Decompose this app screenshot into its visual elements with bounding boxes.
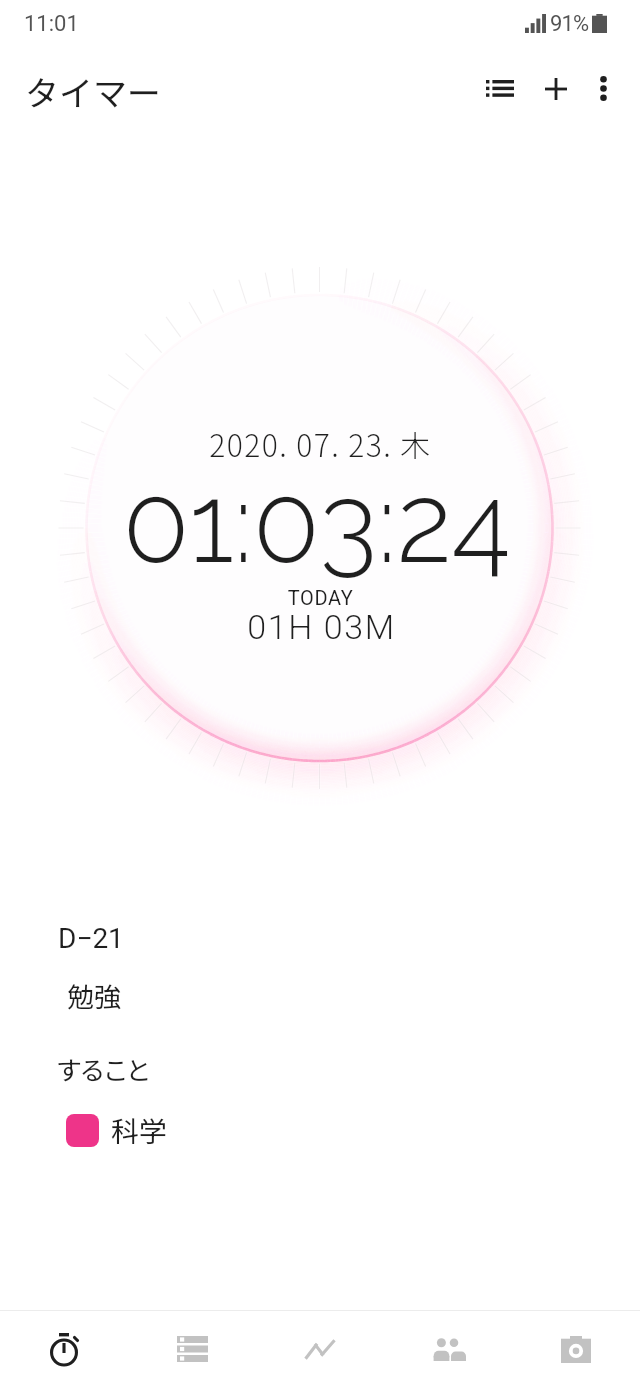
- button[interactable]: More options: [575, 60, 631, 116]
- staticText: D−21: [58, 922, 124, 955]
- staticText: タイマー: [25, 67, 161, 116]
- staticText: 01:03:24: [86, 460, 550, 588]
- staticText: 01H 03M: [88, 607, 553, 647]
- staticText: TODAY: [87, 586, 553, 609]
- button[interactable]: Statistics: [256, 1311, 384, 1387]
- button[interactable]: Records: [128, 1311, 256, 1387]
- button[interactable]: List view: [472, 60, 528, 116]
- button[interactable]: Friends: [384, 1311, 512, 1387]
- staticText: すること: [56, 1050, 149, 1088]
- staticText: 11:01: [24, 11, 79, 37]
- button[interactable]: Timer: [0, 1311, 128, 1387]
- staticText: 2020. 07. 23. 木: [87, 422, 553, 465]
- button[interactable]: Camera: [512, 1311, 640, 1387]
- button[interactable]: D−21: [0, 908, 640, 964]
- staticText: 勉強: [67, 976, 121, 1015]
- button[interactable]: 科学: [0, 1098, 640, 1156]
- staticText: 科学: [111, 1110, 168, 1151]
- button[interactable]: Start or pause timer: [86, 295, 553, 762]
- staticText: 91%: [550, 11, 589, 37]
- button[interactable]: 勉強: [0, 964, 640, 1022]
- button[interactable]: すること: [0, 1036, 640, 1094]
- button[interactable]: Add timer: [528, 61, 584, 117]
